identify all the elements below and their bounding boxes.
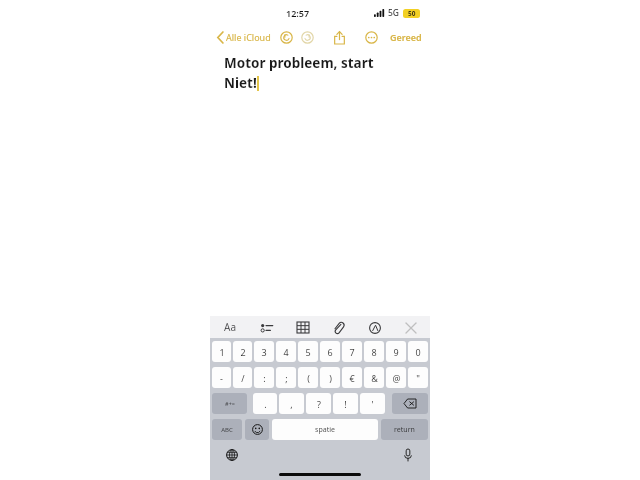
staticText: 6 xyxy=(327,346,333,358)
staticText: 7 xyxy=(349,346,355,358)
staticText: 4 xyxy=(283,346,289,358)
staticText: Niet! xyxy=(224,74,257,92)
button[interactable]: Redo xyxy=(300,30,315,45)
button[interactable]: ' xyxy=(360,393,385,414)
button[interactable]: " xyxy=(408,367,428,388)
button[interactable]: 6 xyxy=(320,341,340,362)
button[interactable]: return xyxy=(381,419,428,440)
button[interactable]: 8 xyxy=(364,341,384,362)
staticText: € xyxy=(349,372,355,384)
button[interactable]: spatie xyxy=(272,419,378,440)
button[interactable]: Undo xyxy=(279,30,294,45)
staticText: ABC xyxy=(221,426,233,434)
staticText: 9 xyxy=(393,346,399,358)
staticText: Gereed xyxy=(390,31,422,43)
button[interactable]: & xyxy=(364,367,384,388)
staticText: 8 xyxy=(371,346,377,358)
staticText: 5 xyxy=(305,346,311,358)
staticText: / xyxy=(241,372,245,384)
staticText: Aa xyxy=(224,320,236,334)
staticText: ( xyxy=(307,372,310,384)
button[interactable]: : xyxy=(254,367,274,388)
staticText: 1 xyxy=(219,346,225,358)
staticText: 12:57 xyxy=(286,7,310,19)
staticText: 50 xyxy=(408,9,416,18)
button[interactable]: Gereed xyxy=(388,31,424,43)
button[interactable]: 9 xyxy=(386,341,406,362)
button[interactable]: More options xyxy=(363,29,379,45)
staticText: spatie xyxy=(315,425,335,435)
button[interactable]: , xyxy=(279,393,304,414)
staticText: 3 xyxy=(261,346,267,358)
button[interactable]: Checklist xyxy=(259,320,274,335)
button[interactable]: € xyxy=(342,367,362,388)
staticText: #+= xyxy=(225,400,235,407)
staticText: Motor probleem, start xyxy=(224,54,374,72)
button[interactable]: #+= xyxy=(212,393,247,414)
staticText: , xyxy=(290,398,293,410)
button[interactable]: . xyxy=(253,393,277,414)
staticText: - xyxy=(220,372,223,384)
staticText: 2 xyxy=(240,346,246,358)
button[interactable]: 0 xyxy=(408,341,428,362)
staticText: Alle iCloud xyxy=(226,31,271,43)
staticText: & xyxy=(371,372,378,384)
button[interactable]: Alle iCloud xyxy=(216,31,272,43)
button[interactable]: ! xyxy=(333,393,358,414)
button[interactable]: Aa xyxy=(222,318,238,336)
button[interactable]: / xyxy=(233,367,252,388)
staticText: ) xyxy=(329,372,332,384)
button[interactable]: 3 xyxy=(254,341,274,362)
button[interactable]: 5 xyxy=(298,341,318,362)
button[interactable]: Close xyxy=(403,320,418,335)
button[interactable]: 4 xyxy=(276,341,296,362)
staticText: ' xyxy=(371,398,374,410)
button[interactable]: @ xyxy=(386,367,406,388)
button[interactable]: Emoji xyxy=(245,419,269,440)
button[interactable]: Backspace xyxy=(392,393,428,414)
staticText: return xyxy=(394,425,415,435)
staticText: " xyxy=(416,372,420,384)
button[interactable]: ABC xyxy=(212,419,242,440)
button[interactable]: 7 xyxy=(342,341,362,362)
button[interactable]: ( xyxy=(298,367,318,388)
button[interactable]: Dictate xyxy=(400,447,416,463)
staticText: . xyxy=(264,398,267,410)
button[interactable]: Table xyxy=(295,320,310,335)
staticText: ! xyxy=(344,398,347,410)
button[interactable]: 1 xyxy=(212,341,231,362)
staticText: ? xyxy=(317,398,321,410)
button[interactable]: Change keyboard language xyxy=(224,447,240,463)
button[interactable]: 2 xyxy=(233,341,252,362)
button[interactable]: ) xyxy=(320,367,340,388)
button[interactable]: ? xyxy=(306,393,331,414)
button[interactable]: Attach xyxy=(331,320,346,335)
staticText: 5G xyxy=(388,7,400,19)
button[interactable]: ; xyxy=(276,367,296,388)
button[interactable]: Share xyxy=(331,29,347,45)
button[interactable]: - xyxy=(212,367,231,388)
staticText: 0 xyxy=(415,346,421,358)
staticText: : xyxy=(263,372,266,384)
staticText: ; xyxy=(285,372,288,384)
button[interactable]: Markup xyxy=(367,320,382,335)
staticText: @ xyxy=(392,372,401,384)
